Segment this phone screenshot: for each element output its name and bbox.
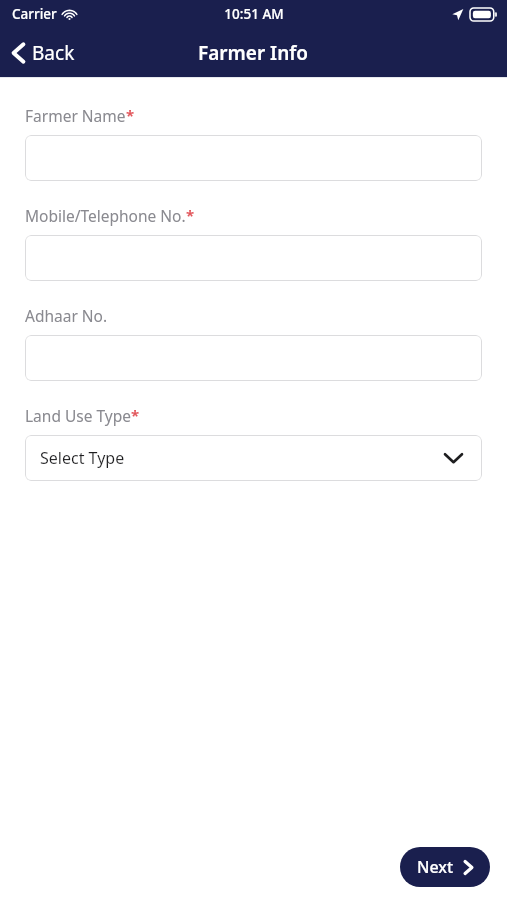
button[interactable]: [25, 135, 482, 181]
button[interactable]: Next: [400, 847, 490, 887]
staticText: *: [186, 205, 195, 225]
button[interactable]: [25, 235, 482, 281]
staticText: Select Type: [40, 447, 125, 469]
staticText: Next: [417, 856, 454, 878]
staticText: *: [131, 405, 140, 425]
staticText: Mobile/Telephone No.: [25, 205, 186, 226]
button[interactable]: Select Type: [25, 435, 482, 481]
staticText: *: [126, 105, 135, 125]
staticText: 10:51 AM: [224, 5, 284, 23]
staticText: Farmer Name: [25, 105, 126, 126]
staticText: Land Use Type: [25, 405, 131, 426]
staticText: Back: [32, 40, 75, 66]
button[interactable]: [25, 335, 482, 381]
staticText: Farmer Info: [198, 40, 309, 66]
staticText: Adhaar No.: [25, 305, 108, 326]
button[interactable]: Back: [10, 36, 77, 70]
staticText: Carrier: [12, 5, 57, 23]
